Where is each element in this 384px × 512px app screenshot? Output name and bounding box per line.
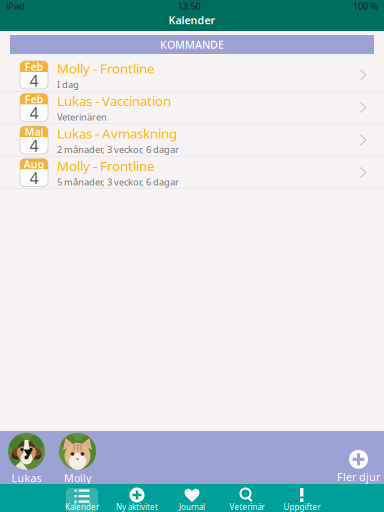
staticText: 4 bbox=[29, 70, 38, 91]
staticText: 5 månader, 3 veckor, 6 dagar bbox=[57, 176, 179, 188]
button[interactable]: Kalender bbox=[54, 484, 109, 512]
staticText: KOMMANDE bbox=[160, 37, 224, 52]
staticText: Uppgifter bbox=[283, 502, 320, 512]
staticText: Ny aktivitet bbox=[116, 502, 158, 512]
staticText: Kalender bbox=[168, 13, 215, 27]
staticText: Feb bbox=[24, 92, 43, 106]
staticText: 4 bbox=[29, 135, 38, 156]
staticText: Lukas - Vaccination bbox=[57, 92, 171, 110]
staticText: Feb bbox=[24, 59, 43, 74]
staticText: Molly - Frontline bbox=[57, 157, 155, 175]
staticText: Fler djur bbox=[337, 470, 380, 484]
staticText: Journal bbox=[179, 502, 205, 512]
button[interactable]: Molly bbox=[59, 433, 96, 485]
button[interactable]: Fler djur bbox=[337, 434, 380, 484]
staticText: Aug bbox=[23, 157, 44, 171]
staticText: 100 % bbox=[353, 0, 378, 12]
staticText: Molly bbox=[64, 471, 91, 485]
button[interactable]: Uppgifter bbox=[274, 484, 329, 512]
staticText: Veterinär bbox=[229, 502, 264, 512]
staticText: Molly - Frontline bbox=[57, 59, 155, 77]
staticText: Maj bbox=[24, 124, 43, 139]
staticText: 2 månader, 3 veckor, 6 dagar bbox=[57, 143, 179, 156]
button[interactable]: Ny aktivitet bbox=[109, 484, 164, 512]
staticText: 13:50 bbox=[177, 0, 200, 12]
button[interactable]: Feb bbox=[0, 91, 384, 123]
staticText: Lukas - Avmaskning bbox=[57, 124, 177, 142]
staticText: I dag bbox=[57, 78, 79, 91]
staticText: Kalender bbox=[65, 502, 99, 512]
button[interactable]: Aug bbox=[0, 156, 384, 188]
staticText: Veterinären bbox=[57, 111, 107, 123]
button[interactable]: Lukas bbox=[8, 433, 45, 485]
staticText: iPad bbox=[6, 0, 25, 12]
button[interactable]: Feb bbox=[0, 59, 384, 91]
button[interactable]: Maj bbox=[0, 124, 384, 156]
staticText: Lukas bbox=[11, 471, 41, 485]
button[interactable]: Veterinär bbox=[219, 484, 274, 512]
staticText: 4 bbox=[29, 167, 38, 189]
staticText: 4 bbox=[29, 102, 38, 124]
button[interactable]: Journal bbox=[164, 484, 219, 512]
